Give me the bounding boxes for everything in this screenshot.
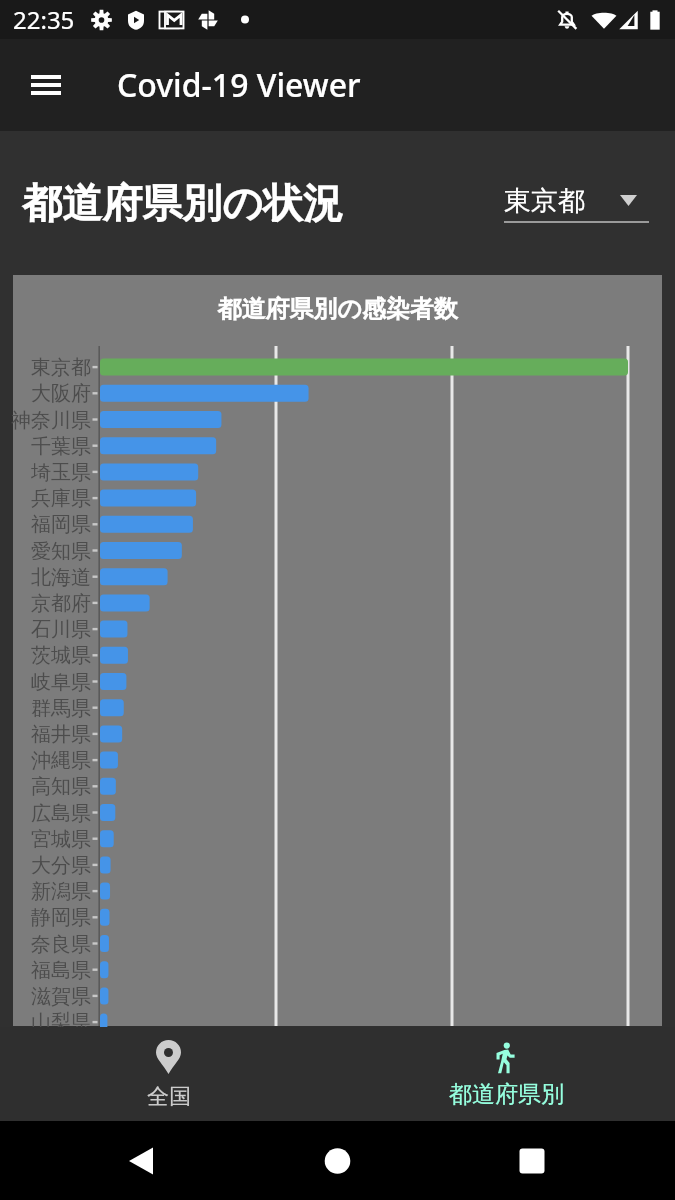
staticText: Covid-19 Viewer [117,63,361,107]
button[interactable]: 都道府県別 [337,1027,675,1121]
staticText: 愛知県 [31,539,91,564]
staticText: 埼玉県 [31,460,91,485]
staticText: 石川県 [31,617,91,642]
staticText: 都道府県別の状況 [22,178,343,228]
button[interactable]: 全国 [0,1027,337,1121]
staticText: 沖縄県 [31,748,91,773]
staticText: 福岡県 [31,512,91,537]
staticText: 都道府県別 [449,1080,564,1109]
staticText: 22:35 [13,3,75,36]
staticText: 福島県 [31,958,91,983]
staticText: 新潟県 [31,879,91,904]
staticText: 群馬県 [31,696,91,721]
button[interactable]: Menu [13,52,79,118]
staticText: 大阪府 [31,381,91,406]
staticText: 茨城県 [31,643,91,668]
staticText: 東京都 [504,184,585,218]
staticText: 大分県 [31,853,91,878]
staticText: 京都府 [31,591,91,616]
staticText: 千葉県 [31,434,91,459]
staticText: 広島県 [31,801,91,826]
staticText: 岐阜県 [31,670,91,695]
staticText: 奈良県 [31,932,91,957]
staticText: 北海道 [31,565,91,590]
button[interactable]: Back [108,1141,174,1181]
staticText: 東京都 [31,355,91,380]
staticText: 都道府県別の感染者数 [13,294,662,324]
staticText: 山梨県 [31,1010,91,1035]
button[interactable]: Home [305,1141,371,1181]
staticText: 高知県 [31,774,91,799]
staticText: 静岡県 [31,905,91,930]
staticText: 兵庫県 [31,486,91,511]
button[interactable]: Recent apps [499,1141,565,1181]
staticText: 滋賀県 [31,984,91,1009]
staticText: 福井県 [31,722,91,747]
button[interactable]: 東京都 [504,178,649,223]
staticText: 宮城県 [31,827,91,852]
staticText: 全国 [147,1083,191,1111]
staticText: 神奈川県 [11,408,91,433]
